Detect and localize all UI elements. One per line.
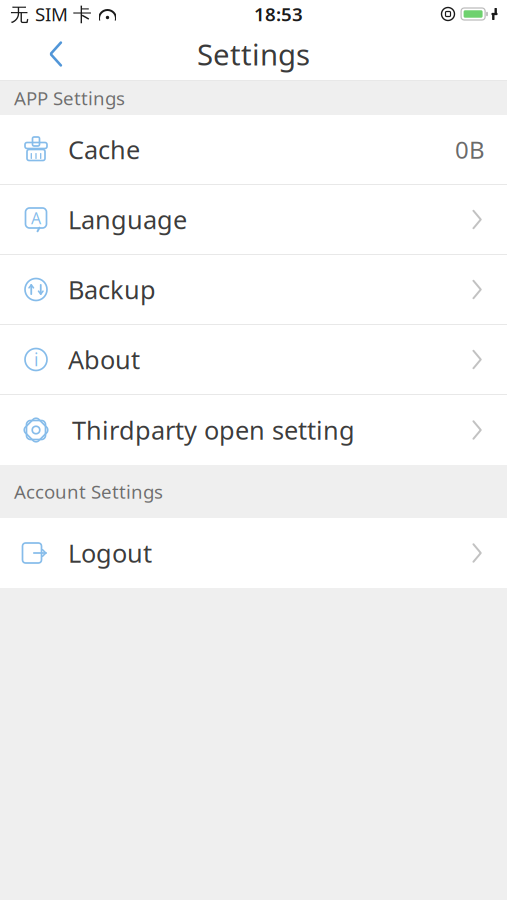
staticText: Settings: [197, 34, 310, 73]
button[interactable]: Backup: [0, 255, 507, 325]
button[interactable]: i: [0, 325, 507, 395]
button[interactable]: Logout: [0, 518, 507, 588]
staticText: APP Settings: [14, 86, 125, 110]
button[interactable]: A: [0, 185, 507, 255]
staticText: A: [31, 207, 41, 229]
button[interactable]: Thirdparty open setting: [0, 395, 507, 465]
button[interactable]: Cache: [0, 115, 507, 185]
staticText: About: [68, 343, 140, 376]
staticText: Thirdparty open setting: [72, 413, 355, 447]
staticText: Backup: [68, 273, 156, 306]
staticText: Cache: [68, 133, 140, 166]
staticText: 无 SIM 卡: [10, 2, 92, 26]
staticText: 18:53: [254, 2, 303, 26]
staticText: Language: [68, 203, 187, 236]
staticText: 0B: [455, 134, 485, 165]
staticText: Account Settings: [14, 479, 163, 504]
staticText: Logout: [68, 536, 152, 570]
button[interactable]: Back: [34, 32, 78, 76]
staticText: i: [34, 348, 38, 371]
